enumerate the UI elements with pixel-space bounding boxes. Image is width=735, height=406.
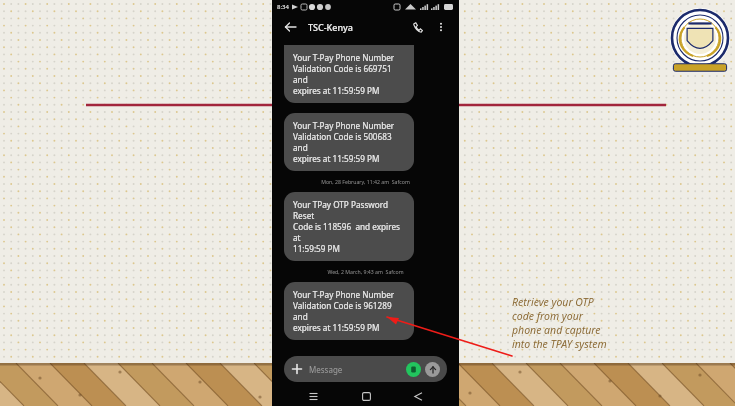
button[interactable]: Back xyxy=(407,386,429,406)
staticText: TSC-Kenya xyxy=(308,21,354,33)
staticText: Message xyxy=(309,364,343,375)
staticText: Retrieve your OTP xyxy=(512,295,594,309)
button[interactable]: Your T-Pay Phone Number Validation Code … xyxy=(284,113,414,171)
button[interactable]: More options xyxy=(431,17,451,37)
staticText: Mon, 28 February, 11:42 am Safcom xyxy=(321,178,410,185)
staticText: phone and capture xyxy=(512,323,601,337)
staticText: 8:34 xyxy=(277,3,289,11)
button[interactable]: Attach xyxy=(406,362,421,377)
other: Teachers Service Commission Kenya logo xyxy=(666,8,734,76)
staticText: Wed, 2 March, 9:43 am Safcom xyxy=(327,268,404,275)
button[interactable]: Recents xyxy=(302,386,324,406)
staticText: Your TPay OTP Password Reset Code is 118… xyxy=(293,199,405,254)
staticText: Your T-Pay Phone Number Validation Code … xyxy=(293,52,405,96)
button[interactable]: Call xyxy=(407,17,427,37)
staticText: into the TPAY system xyxy=(512,337,607,351)
button[interactable]: Back xyxy=(280,17,300,37)
button[interactable]: Message xyxy=(284,356,447,382)
button[interactable]: Your T-Pay Phone Number Validation Code … xyxy=(284,45,414,103)
button[interactable]: Send xyxy=(425,362,440,377)
button[interactable]: Your TPay OTP Password Reset Code is 118… xyxy=(284,192,414,261)
staticText: Your T-Pay Phone Number Validation Code … xyxy=(293,289,405,333)
button[interactable]: Your T-Pay Phone Number Validation Code … xyxy=(284,282,414,340)
staticText: code from your xyxy=(512,309,583,323)
button[interactable]: Home xyxy=(355,386,377,406)
staticText: Your T-Pay Phone Number Validation Code … xyxy=(293,120,405,164)
